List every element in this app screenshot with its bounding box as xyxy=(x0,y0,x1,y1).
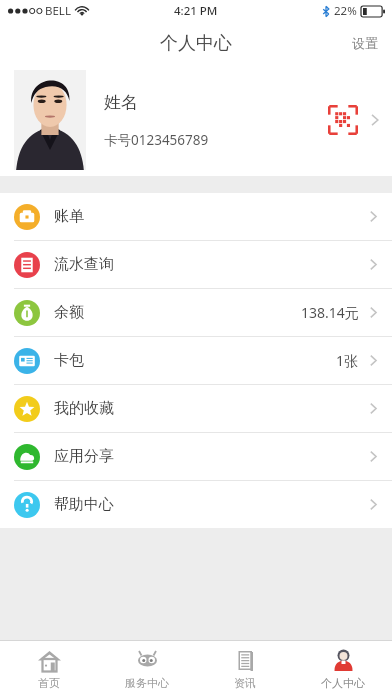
button[interactable]: 姓名 xyxy=(0,64,392,176)
button[interactable]: 资讯 xyxy=(196,641,294,696)
staticText: 首页 xyxy=(38,676,60,690)
staticText: 账单 xyxy=(54,207,84,226)
staticText: 个人中心 xyxy=(160,32,232,55)
button[interactable]: 余额 xyxy=(0,289,392,336)
button[interactable]: 首页 xyxy=(0,641,98,696)
button[interactable]: 设置 xyxy=(338,27,392,59)
staticText: 4:21 PM xyxy=(174,3,218,19)
button[interactable]: 账单 xyxy=(0,193,392,240)
staticText: 卡号0123456789 xyxy=(104,131,209,149)
button[interactable]: 流水查询 xyxy=(0,241,392,288)
staticText: 138.14元 xyxy=(301,303,359,322)
staticText: 帮助中心 xyxy=(54,495,114,514)
button[interactable]: 扫码 xyxy=(326,103,360,137)
staticText: 我的收藏 xyxy=(54,399,114,418)
staticText: 设置 xyxy=(352,35,378,51)
button[interactable]: 应用分享 xyxy=(0,433,392,480)
staticText: 卡包 xyxy=(54,351,84,370)
staticText: 22% xyxy=(334,3,357,19)
staticText: 余额 xyxy=(54,303,84,322)
staticText: 流水查询 xyxy=(54,255,114,274)
button[interactable]: 卡包 xyxy=(0,337,392,384)
button[interactable]: 帮助中心 xyxy=(0,481,392,528)
staticText: 应用分享 xyxy=(54,447,114,466)
staticText: 姓名 xyxy=(104,92,138,113)
staticText: 服务中心 xyxy=(125,676,169,690)
button[interactable]: 个人中心 xyxy=(294,641,392,696)
button[interactable]: 我的收藏 xyxy=(0,385,392,432)
staticText: 资讯 xyxy=(234,676,256,690)
staticText: 1张 xyxy=(336,351,359,370)
staticText: 个人中心 xyxy=(321,676,365,690)
button[interactable]: 服务中心 xyxy=(98,641,196,696)
staticText: BELL xyxy=(45,3,71,19)
